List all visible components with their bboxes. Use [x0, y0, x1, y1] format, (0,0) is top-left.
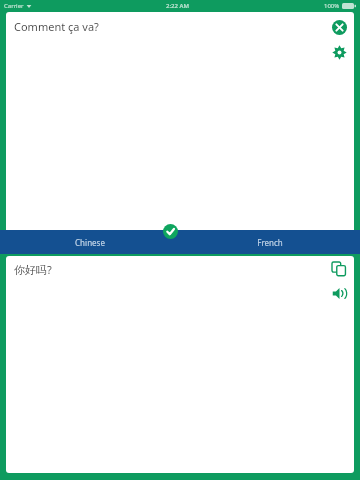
staticText: Chinese: [75, 237, 105, 248]
button[interactable]: French: [180, 230, 360, 254]
staticText: French: [257, 237, 283, 248]
button[interactable]: Chinese: [0, 230, 180, 254]
staticText: 100%: [324, 2, 340, 10]
button[interactable]: Settings: [328, 41, 350, 63]
staticText: Carrier: [4, 2, 24, 10]
button[interactable]: Speak translation: [328, 282, 350, 304]
button[interactable]: Swap languages: [163, 224, 178, 239]
staticText: 你好吗?: [14, 262, 52, 277]
staticText: 2:22 AM: [166, 2, 189, 10]
staticText: Comment ça va?: [14, 19, 99, 34]
button[interactable]: Clear text: [328, 16, 350, 38]
button[interactable]: Copy translation: [328, 258, 350, 280]
